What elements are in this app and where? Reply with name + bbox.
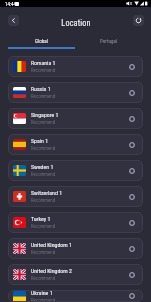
button[interactable]: United Kingdom 2 [8,264,143,285]
staticText: Romania 1 [31,60,56,67]
staticText: Singapore 1 [31,112,59,119]
staticText: United Kingdom 1 [31,242,72,249]
button[interactable]: Sweden 1 [8,160,143,181]
staticText: Sweden 1 [31,164,54,171]
button[interactable]: Select United Kingdom 2 [127,270,137,280]
button[interactable]: United Kingdom 1 [8,238,143,259]
button[interactable]: Romania 1 [8,56,143,77]
button[interactable]: Refresh [133,15,144,26]
button[interactable]: Select United Kingdom 1 [127,244,137,254]
staticText: Portugal [100,38,118,44]
button[interactable]: Spain 1 [8,134,143,155]
button[interactable]: Back [8,15,19,26]
staticText: Location [61,18,91,28]
staticText: Spain 1 [31,138,49,145]
staticText: Switzerland 1 [31,190,63,197]
staticText: Recommend [31,275,56,281]
staticText: Russia 1 [31,86,51,93]
button[interactable]: Select Singapore 1 [127,114,137,124]
staticText: Recommend [31,145,56,151]
button[interactable]: Ukraine 1 [8,290,143,302]
staticText: Recommend [31,93,56,99]
staticText: Recommend [31,249,56,255]
button[interactable]: Portugal [75,34,143,47]
button[interactable]: Select Romania 1 [127,62,137,72]
button[interactable]: Turkey 1 [8,212,143,233]
button[interactable]: Switzerland 1 [8,186,143,207]
staticText: Recommend [31,171,56,177]
button[interactable]: Select Spain 1 [127,140,137,150]
staticText: Global [35,38,48,44]
staticText: Recommend [31,297,56,302]
staticText: Ukraine 1 [31,290,53,297]
button[interactable]: Select Switzerland 1 [127,192,137,202]
staticText: Recommend [31,197,56,203]
staticText: Recommend [31,67,56,73]
staticText: Recommend [31,119,56,125]
button[interactable]: Singapore 1 [8,108,143,129]
staticText: 14:44 [5,1,17,7]
button[interactable]: Select Turkey 1 [127,218,137,228]
staticText: Turkey 1 [31,216,51,223]
staticText: Recommend [31,223,56,229]
button[interactable]: Select Sweden 1 [127,166,137,176]
button[interactable]: Global [8,34,75,47]
staticText: United Kingdom 2 [31,268,72,275]
button[interactable]: Select Russia 1 [127,88,137,98]
button[interactable]: Select Ukraine 1 [127,291,137,301]
button[interactable]: Russia 1 [8,82,143,103]
